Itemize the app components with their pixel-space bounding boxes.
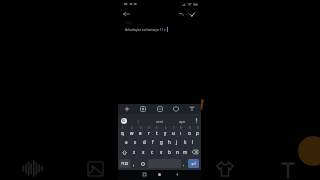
button[interactable]: z	[130, 147, 139, 157]
button[interactable]: v	[157, 147, 165, 157]
staticText: b	[168, 149, 171, 155]
staticText: z	[133, 149, 136, 155]
button[interactable]: Undo	[176, 9, 186, 19]
button[interactable]: a	[122, 136, 131, 147]
button[interactable]: 8	[177, 126, 185, 136]
button[interactable]: Enter	[188, 159, 199, 168]
staticText: o	[188, 130, 191, 136]
staticText: p	[196, 130, 199, 136]
button[interactable]: Home	[156, 171, 163, 178]
staticText: k	[184, 139, 187, 145]
button[interactable]: Audio	[21, 157, 44, 180]
staticText: j	[176, 139, 178, 145]
button[interactable]: 7	[169, 126, 177, 136]
button[interactable]: l	[189, 136, 197, 147]
button[interactable]: 2	[127, 126, 136, 136]
button[interactable]: Save	[187, 9, 197, 19]
button[interactable]: d	[140, 136, 149, 147]
button[interactable]: Backspace	[189, 147, 201, 157]
staticText: 6	[165, 126, 167, 130]
staticText: 7	[173, 126, 175, 130]
staticText: 9	[189, 126, 191, 130]
button[interactable]: Sticker	[171, 104, 181, 114]
button[interactable]: Recents	[141, 171, 148, 178]
staticText: v	[160, 149, 163, 155]
staticText: 5	[156, 126, 158, 130]
button[interactable]: x	[139, 147, 148, 157]
staticText: y	[164, 130, 167, 136]
staticText: 4	[148, 126, 150, 130]
staticText: s	[134, 139, 137, 145]
button[interactable]: .	[181, 159, 187, 168]
button[interactable]: Text	[187, 104, 197, 114]
staticText: c	[151, 149, 154, 155]
button[interactable]: Assist	[122, 104, 132, 114]
button[interactable]: Overlay	[215, 159, 235, 179]
button[interactable]: h	[165, 136, 173, 147]
button[interactable]: n	[173, 147, 181, 157]
button[interactable]: Redo	[183, 9, 193, 19]
staticText: ayrı	[179, 119, 186, 124]
staticText: l	[192, 139, 194, 145]
button[interactable]: c	[148, 147, 157, 157]
button[interactable]: Shift	[118, 147, 130, 157]
staticText: .	[183, 161, 185, 167]
staticText: d	[143, 139, 146, 145]
button[interactable]: ,	[130, 159, 138, 168]
button[interactable]: b	[165, 147, 173, 157]
button[interactable]: 0	[193, 126, 201, 136]
staticText: 0	[197, 126, 199, 130]
staticText: r	[148, 130, 150, 136]
staticText: seni	[156, 119, 163, 124]
staticText: g	[160, 139, 163, 145]
staticText: f	[152, 139, 154, 145]
staticText: ı	[180, 130, 182, 136]
button[interactable]: Google	[121, 118, 127, 124]
button[interactable]: 5	[153, 126, 161, 136]
button[interactable]: Clipboard	[138, 104, 148, 114]
staticText: q	[121, 130, 124, 136]
button[interactable]: 6	[161, 126, 169, 136]
button[interactable]: Symbols	[119, 159, 130, 168]
staticText: G	[122, 118, 126, 124]
staticText: ,	[133, 161, 135, 167]
button[interactable]: Voice input	[193, 117, 200, 124]
button[interactable]: Translate	[155, 104, 165, 114]
staticText: t	[156, 130, 158, 136]
staticText: h	[168, 139, 171, 145]
button[interactable]: Back	[121, 9, 132, 19]
staticText: a	[125, 139, 128, 145]
button[interactable]: j	[173, 136, 181, 147]
button[interactable]: 1	[118, 126, 127, 136]
button[interactable]: Text	[278, 160, 298, 180]
button[interactable]: g	[157, 136, 165, 147]
staticText: 8	[180, 126, 182, 130]
staticText: 2	[131, 126, 133, 130]
button[interactable]: 3	[136, 126, 145, 136]
button[interactable]: ayrı	[174, 116, 190, 126]
button[interactable]: Emoji	[138, 159, 147, 168]
staticText: Title	[125, 20, 133, 25]
staticText: u	[172, 130, 175, 136]
button[interactable]: Back	[173, 171, 180, 178]
staticText: 3	[140, 126, 142, 130]
staticText: m	[183, 149, 188, 155]
button[interactable]: k	[181, 136, 189, 147]
staticText: w	[130, 130, 134, 136]
button[interactable]: seni	[151, 116, 167, 126]
button[interactable]: Sticker	[85, 159, 105, 179]
button[interactable]: f	[149, 136, 157, 147]
button[interactable]: s	[131, 136, 140, 147]
button[interactable]: 9	[185, 126, 193, 136]
staticText: Arkadaşlar acılıtamaya 11 e	[125, 28, 166, 32]
button[interactable]: 4	[145, 126, 153, 136]
staticText: e	[139, 130, 142, 136]
staticText: x	[142, 149, 145, 155]
button[interactable]: m	[181, 147, 189, 157]
staticText: 1	[122, 126, 124, 130]
staticText: ?123	[121, 161, 129, 166]
staticText: n	[176, 149, 179, 155]
